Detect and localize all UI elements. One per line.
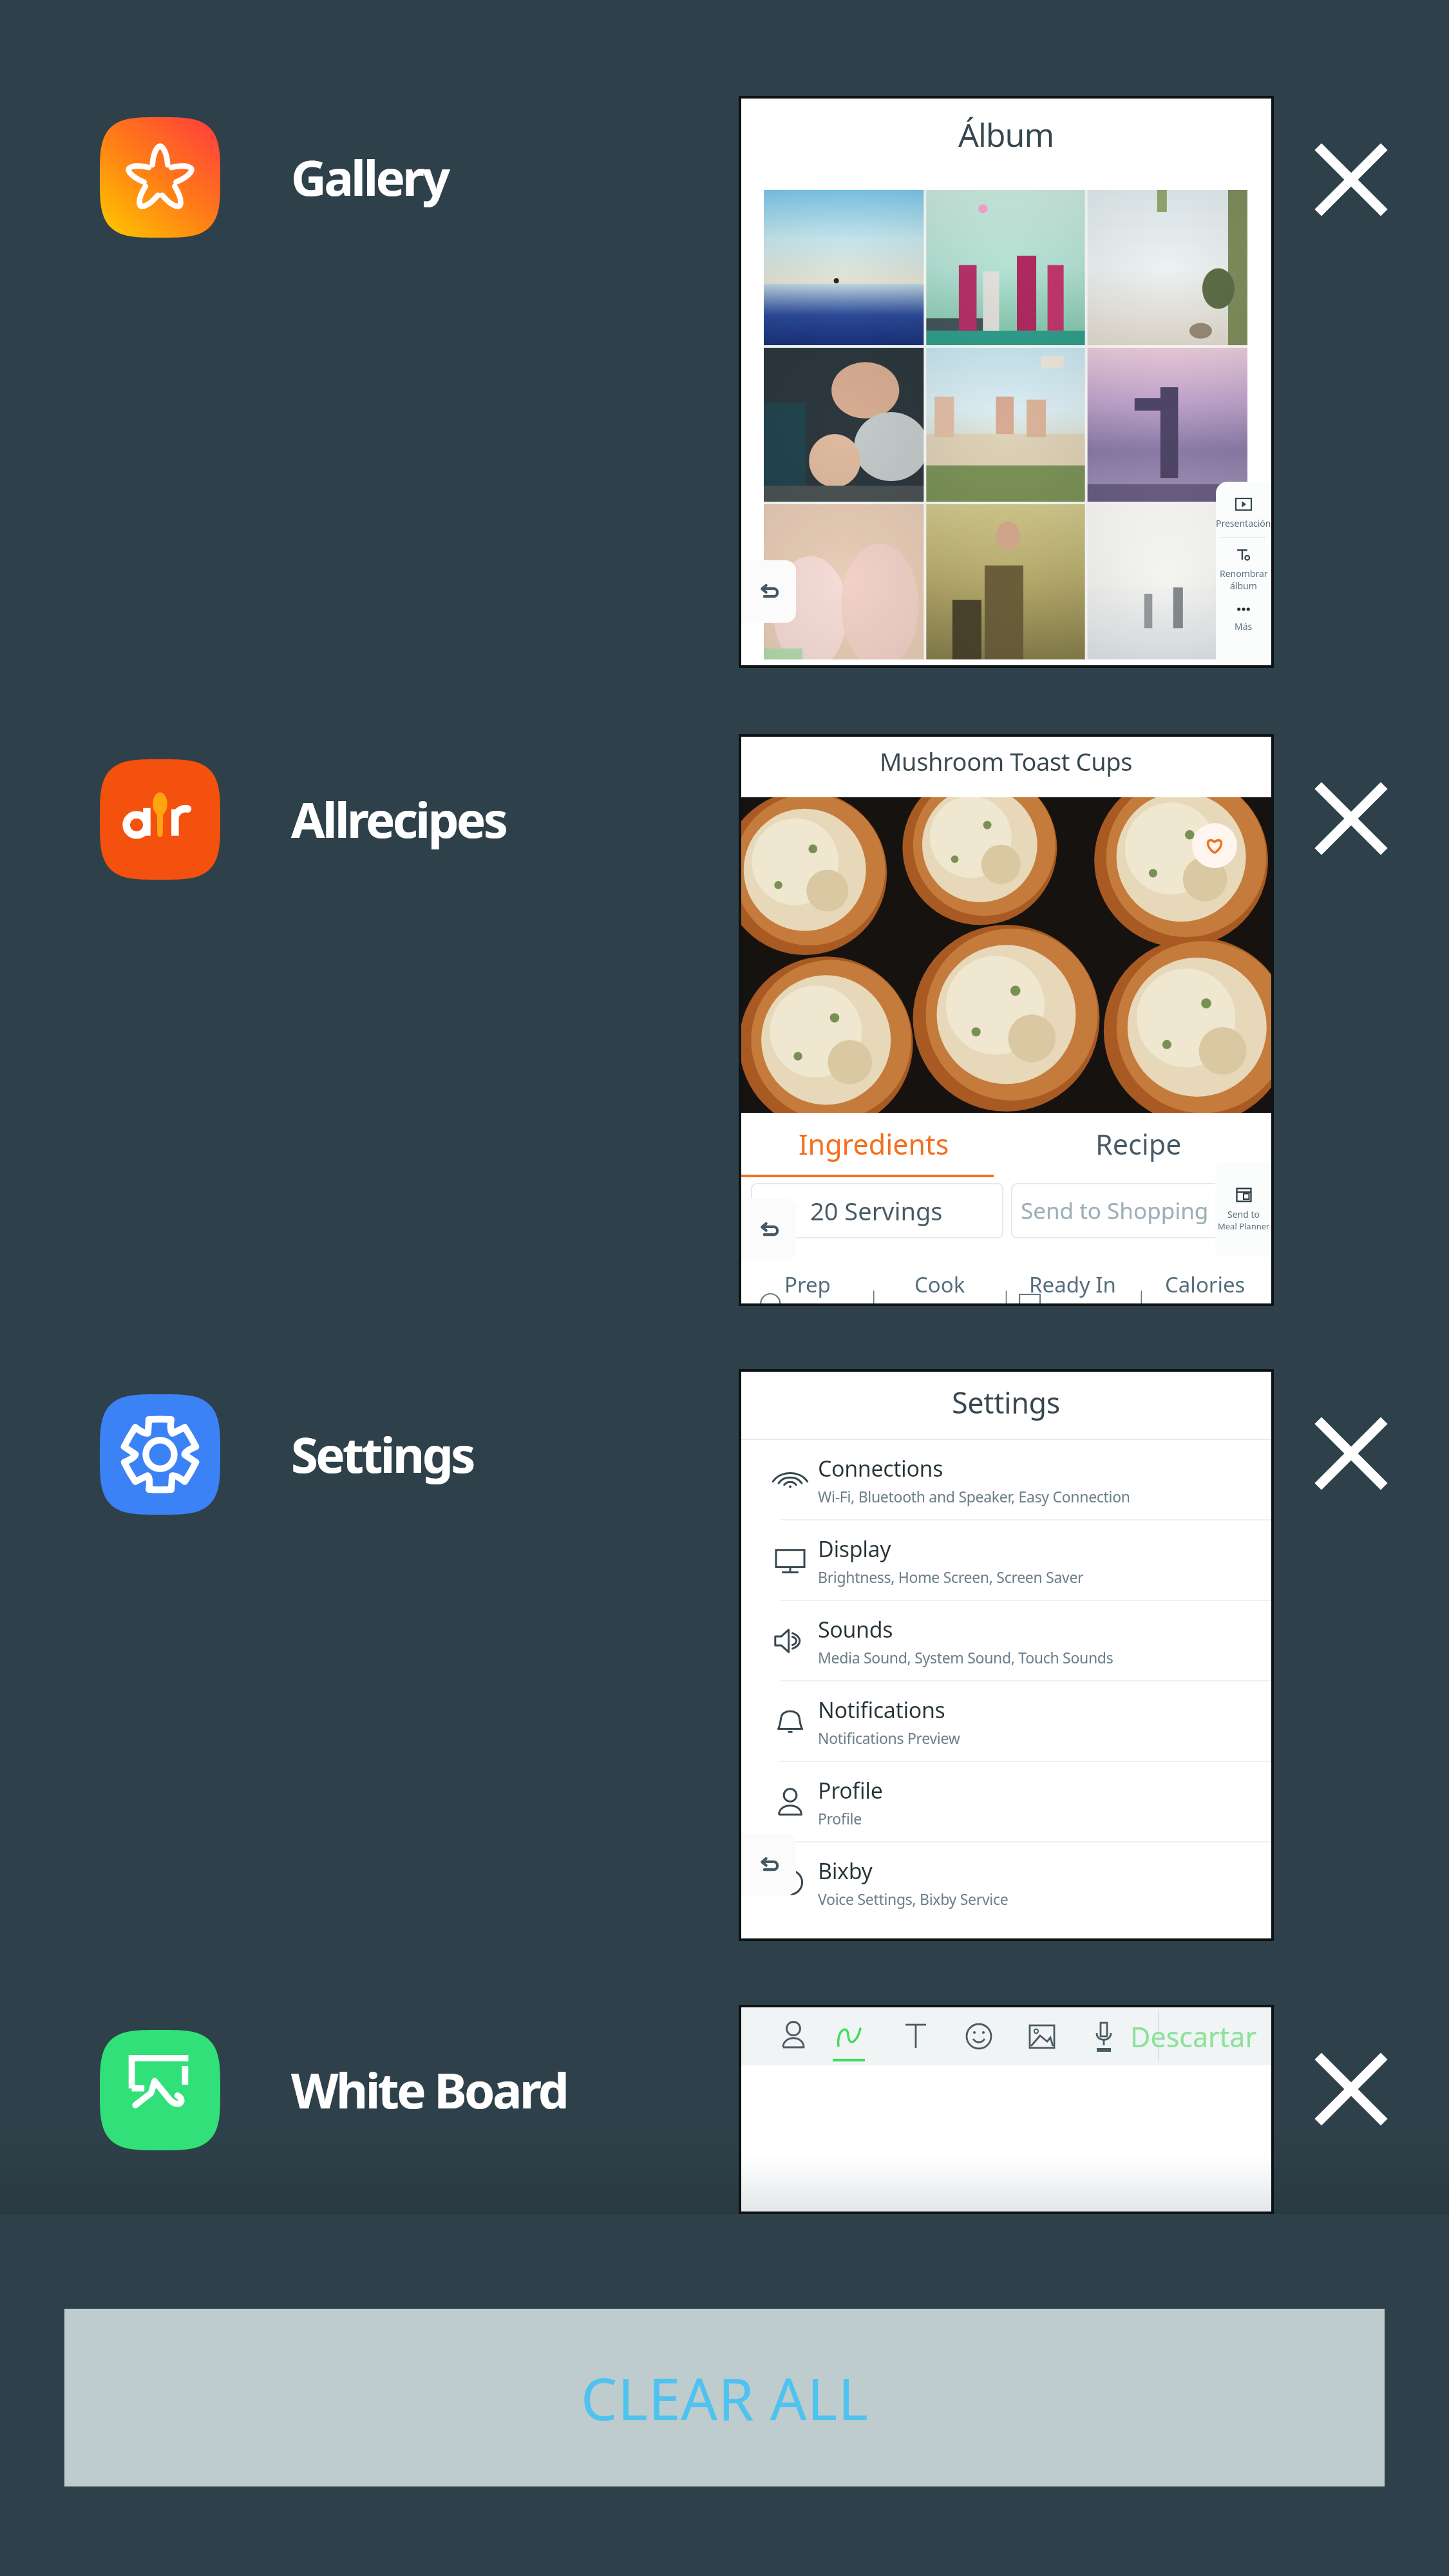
button[interactable]: Send to	[1215, 1162, 1271, 1257]
button[interactable]: Álbum	[741, 99, 1271, 665]
button[interactable]: Favourite	[1192, 823, 1237, 868]
staticText: Renombrar	[1220, 567, 1268, 580]
button[interactable]: Back	[741, 1198, 796, 1261]
button[interactable]: Close app	[1287, 1383, 1416, 1512]
button[interactable]: Profile	[741, 1762, 1271, 1841]
staticText: Profile	[818, 1808, 862, 1828]
staticText: Display	[818, 1534, 891, 1564]
staticText: Allrecipes	[291, 786, 506, 853]
button[interactable]: Back	[741, 1833, 796, 1896]
button[interactable]: Back	[741, 560, 796, 623]
button[interactable]: Notifications	[741, 1681, 1271, 1761]
staticText: Notifications	[818, 1695, 945, 1725]
staticText: Prep	[784, 1270, 831, 1299]
button[interactable]: Allrecipes	[100, 755, 679, 884]
staticText: Voice Settings, Bixby Service	[818, 1889, 1009, 1909]
button[interactable]: Settings	[741, 1372, 1271, 1938]
staticText: Mushroom Toast Cups	[880, 744, 1133, 778]
button[interactable]: Presentación	[1216, 482, 1271, 665]
staticText: Notifications Preview	[818, 1728, 960, 1748]
staticText: álbum	[1230, 580, 1257, 592]
button[interactable]: White Board	[100, 2025, 679, 2154]
button[interactable]: Ingredients	[741, 1113, 1006, 1175]
button[interactable]: Display	[741, 1520, 1271, 1600]
staticText: Ready In	[1029, 1270, 1116, 1299]
button[interactable]: Close app	[1287, 109, 1416, 238]
staticText: Settings	[952, 1383, 1061, 1422]
staticText: Recipe	[1095, 1125, 1182, 1163]
staticText: White Board	[291, 2056, 567, 2123]
staticText: Bixby	[818, 1856, 873, 1886]
staticText: CLEAR ALL	[581, 2359, 869, 2437]
button[interactable]: Send to Shopping List	[1010, 1184, 1261, 1238]
button[interactable]: Descartar	[1130, 2007, 1257, 2065]
staticText: Sounds	[818, 1615, 893, 1644]
staticText: Más	[1235, 620, 1253, 632]
button[interactable]: Bixby	[741, 1842, 1271, 1922]
staticText: 20 Servings	[810, 1194, 943, 1227]
staticText: Send to Shopping List	[1021, 1195, 1251, 1226]
button[interactable]: CLEAR ALL	[64, 2309, 1385, 2486]
button[interactable]: Mushroom Toast Cups	[741, 737, 1271, 1303]
staticText: Presentación	[1216, 517, 1271, 529]
staticText: Calories	[1165, 1270, 1245, 1299]
staticText: Settings	[291, 1421, 473, 1488]
staticText: Cook	[914, 1270, 965, 1299]
staticText: Connections	[818, 1454, 943, 1483]
staticText: Wi-Fi, Bluetooth and Speaker, Easy Conne…	[818, 1486, 1130, 1506]
staticText: Profile	[818, 1776, 883, 1805]
button[interactable]: Gallery	[100, 113, 679, 241]
staticText: Meal Planner	[1218, 1220, 1270, 1232]
button[interactable]: Connections	[741, 1440, 1271, 1519]
staticText: Media Sound, System Sound, Touch Sounds	[818, 1647, 1113, 1667]
button[interactable]: 20 Servings	[752, 1184, 1001, 1238]
staticText: Send to	[1227, 1208, 1260, 1220]
button[interactable]: Recipe	[1006, 1113, 1271, 1175]
button[interactable]: Close app	[1287, 748, 1416, 877]
staticText: Brightness, Home Screen, Screen Saver	[818, 1567, 1084, 1587]
staticText: Gallery	[291, 144, 448, 211]
button[interactable]: Settings	[100, 1390, 679, 1519]
staticText: Ingredients	[799, 1125, 949, 1163]
staticText: Descartar	[1130, 2018, 1257, 2056]
button[interactable]: Sounds	[741, 1601, 1271, 1680]
button[interactable]: Descartar	[741, 2007, 1271, 2211]
button[interactable]: Close app	[1287, 2019, 1416, 2148]
staticText: Álbum	[958, 113, 1054, 156]
